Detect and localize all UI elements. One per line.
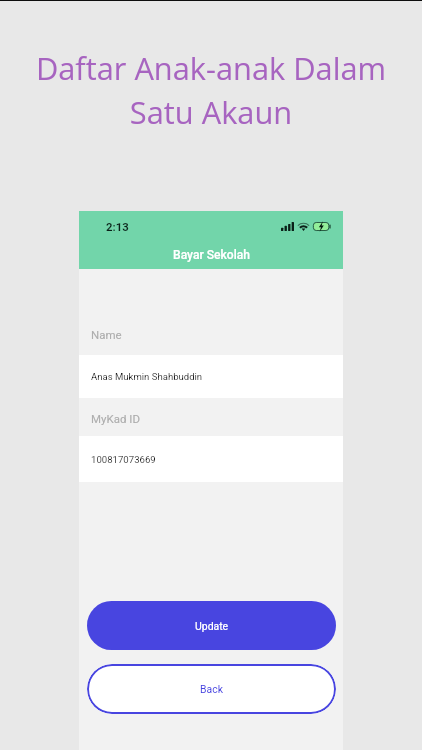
button[interactable]: Anas Mukmin Shahbuddin [79, 355, 343, 398]
staticText: MyKad ID [91, 412, 140, 425]
staticText: Bayar Sekolah [173, 248, 250, 262]
staticText: Back [200, 683, 223, 695]
staticText: Update [195, 620, 229, 632]
staticText: 2:13 [106, 221, 129, 234]
staticText: Anas Mukmin Shahbuddin [91, 371, 203, 382]
button[interactable]: Back [87, 664, 336, 714]
button[interactable]: Update [87, 601, 336, 650]
staticText: Daftar Anak-anak Dalam Satu Akaun [0, 47, 422, 133]
staticText: 100817073669 [91, 454, 156, 465]
button[interactable]: 100817073669 [79, 436, 343, 482]
staticText: Name [91, 328, 122, 341]
